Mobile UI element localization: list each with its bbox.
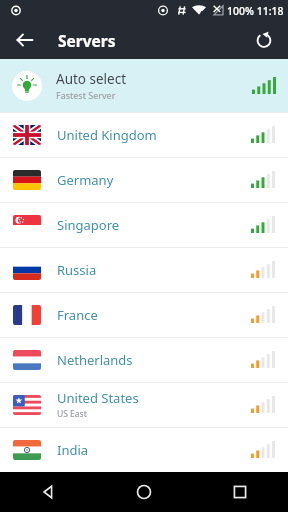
button[interactable]: Refresh bbox=[248, 24, 280, 56]
button[interactable]: Back bbox=[10, 25, 40, 55]
button[interactable]: Russia bbox=[0, 247, 288, 292]
button[interactable]: Singapore bbox=[0, 202, 288, 247]
button[interactable]: Germany bbox=[0, 157, 288, 202]
staticText: Singapore bbox=[57, 216, 120, 234]
staticText: India bbox=[57, 441, 89, 459]
button[interactable]: United States bbox=[0, 382, 288, 427]
button[interactable]: United Kingdom bbox=[0, 112, 288, 157]
staticText: Russia bbox=[57, 261, 97, 279]
staticText: Netherlands bbox=[57, 351, 133, 369]
staticText: 100% 11:18 bbox=[227, 4, 284, 18]
staticText: Auto select bbox=[56, 70, 127, 88]
staticText: France bbox=[57, 306, 98, 324]
staticText: United Kingdom bbox=[57, 126, 157, 144]
staticText: Germany bbox=[57, 171, 114, 189]
staticText: Servers bbox=[58, 30, 116, 51]
button[interactable]: France bbox=[0, 292, 288, 337]
button[interactable]: Auto select bbox=[0, 59, 288, 112]
staticText: Fastest Server bbox=[56, 89, 116, 101]
staticText: United States bbox=[57, 389, 139, 407]
button[interactable]: Netherlands bbox=[0, 337, 288, 382]
button[interactable]: Back bbox=[0, 472, 96, 512]
staticText: US East bbox=[57, 408, 87, 420]
button[interactable]: India bbox=[0, 427, 288, 472]
button[interactable]: Home bbox=[96, 472, 192, 512]
button[interactable]: Recent apps bbox=[192, 472, 288, 512]
